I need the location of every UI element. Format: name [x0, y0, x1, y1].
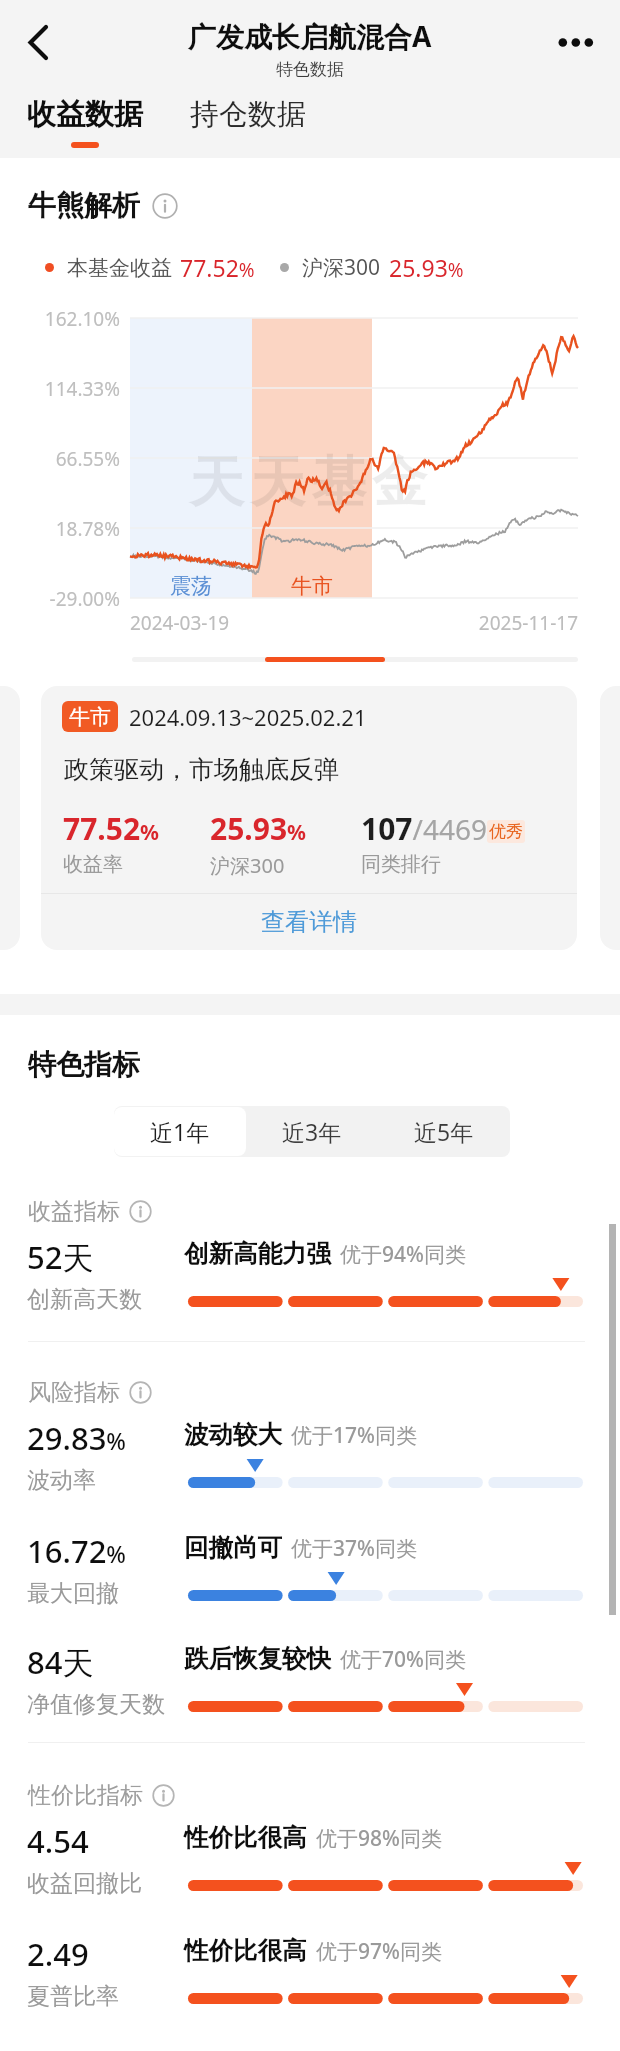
button[interactable]: 近1年: [114, 1107, 246, 1156]
staticText: 牛市: [291, 573, 333, 599]
staticText: 夏普比率: [27, 1982, 119, 2011]
staticText: 77.52%: [63, 808, 160, 849]
button[interactable]: More options: [543, 10, 608, 75]
staticText: 2025-11-17: [455, 610, 578, 636]
staticText: 广发成长启航混合A: [188, 17, 432, 55]
staticText: 优秀: [489, 821, 523, 842]
staticText: 优于98%同类: [316, 1824, 442, 1853]
staticText: 收益指标: [28, 1197, 120, 1226]
staticText: 16.72%: [27, 1530, 126, 1572]
staticText: 沪深300: [302, 253, 381, 282]
button[interactable]: Back: [4, 8, 72, 76]
staticText: 优于37%同类: [291, 1534, 417, 1563]
staticText: 优于97%同类: [316, 1937, 442, 1966]
staticText: 66.55%: [20, 446, 120, 472]
staticText: 持仓数据: [190, 96, 306, 133]
staticText: 风险指标: [28, 1378, 120, 1407]
staticText: 沪深300: [210, 852, 285, 879]
staticText: 84天: [27, 1641, 94, 1683]
staticText: -29.00%: [20, 586, 120, 612]
button[interactable]: 近3年: [246, 1107, 378, 1156]
staticText: 优于94%同类: [340, 1240, 466, 1269]
staticText: 77.52%: [180, 252, 255, 283]
staticText: 优于17%同类: [291, 1421, 417, 1450]
staticText: 震荡: [170, 573, 212, 599]
button[interactable]: 近5年: [378, 1107, 510, 1156]
staticText: 近3年: [282, 1116, 342, 1147]
staticText: 收益数据: [27, 96, 143, 133]
staticText: 2.49: [27, 1933, 89, 1975]
staticText: 同类排行: [361, 852, 441, 877]
staticText: 波动率: [27, 1466, 96, 1495]
button[interactable]: 查看详情: [41, 894, 577, 950]
staticText: 25.93%: [389, 252, 464, 283]
staticText: 特色数据: [276, 59, 344, 80]
staticText: 25.93%: [210, 808, 307, 849]
staticText: 创新高能力强: [184, 1238, 331, 1269]
staticText: 跌后恢复较快: [184, 1643, 331, 1674]
staticText: 波动较大: [184, 1419, 282, 1450]
staticText: 优于70%同类: [340, 1645, 466, 1674]
staticText: 净值修复天数: [27, 1690, 165, 1719]
staticText: 收益回撤比: [27, 1869, 142, 1898]
staticText: 牛市: [69, 704, 111, 730]
staticText: 2024-03-19: [130, 610, 230, 636]
staticText: 性价比很高: [184, 1935, 307, 1966]
button[interactable]: 牛市: [41, 686, 577, 950]
staticText: 创新高天数: [27, 1285, 142, 1314]
staticText: 性价比指标: [28, 1781, 143, 1810]
staticText: 162.10%: [20, 306, 120, 332]
staticText: 近5年: [414, 1116, 474, 1147]
staticText: 2024.09.13~2025.02.21: [129, 702, 367, 732]
staticText: 查看详情: [261, 907, 357, 937]
staticText: 最大回撤: [27, 1579, 119, 1608]
staticText: 18.78%: [20, 516, 120, 542]
staticText: 性价比很高: [184, 1822, 307, 1853]
button[interactable]: 收益数据: [13, 96, 157, 148]
staticText: 回撤尚可: [184, 1532, 282, 1563]
staticText: 52天: [27, 1236, 94, 1278]
staticText: 4.54: [27, 1820, 89, 1862]
staticText: 近1年: [150, 1116, 210, 1147]
staticText: 特色指标: [28, 1047, 140, 1082]
staticText: 政策驱动，市场触底反弹: [64, 754, 339, 785]
staticText: 29.83%: [27, 1417, 126, 1459]
staticText: 天天基金: [186, 448, 430, 517]
staticText: 114.33%: [20, 376, 120, 402]
staticText: 107/4469: [361, 808, 487, 849]
staticText: 本基金收益: [67, 255, 172, 281]
staticText: 牛熊解析: [28, 188, 140, 223]
button[interactable]: 持仓数据: [176, 96, 320, 133]
staticText: 收益率: [63, 852, 123, 877]
